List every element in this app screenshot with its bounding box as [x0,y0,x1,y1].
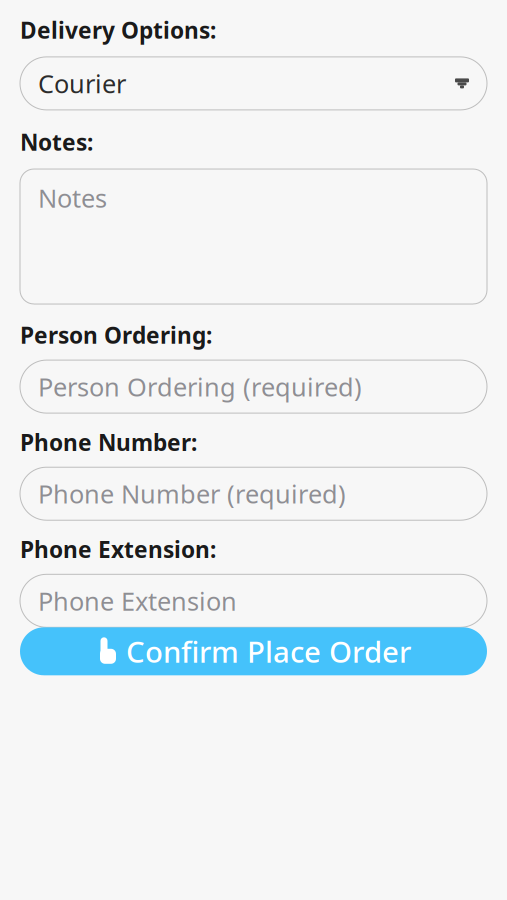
button[interactable]: Phone Number (required) [20,467,487,520]
button[interactable]: Courier [20,57,487,110]
staticText: Person Ordering (required) [38,370,362,403]
staticText: Courier [38,67,126,100]
staticText: Notes: [20,127,93,157]
staticText: Delivery Options: [20,15,216,45]
staticText: Phone Extension: [20,534,216,564]
staticText: Phone Extension [38,584,237,618]
button[interactable]: Confirm Place Order [20,627,487,675]
staticText: Phone Number: [20,427,197,457]
staticText: Phone Number (required) [38,477,346,510]
staticText: Notes [38,181,107,215]
button[interactable]: Person Ordering (required) [20,360,487,413]
staticText: Confirm Place Order [126,632,411,671]
staticText: Person Ordering: [20,320,212,350]
button[interactable]: Phone Extension [20,574,487,627]
button[interactable]: Notes [20,169,487,304]
